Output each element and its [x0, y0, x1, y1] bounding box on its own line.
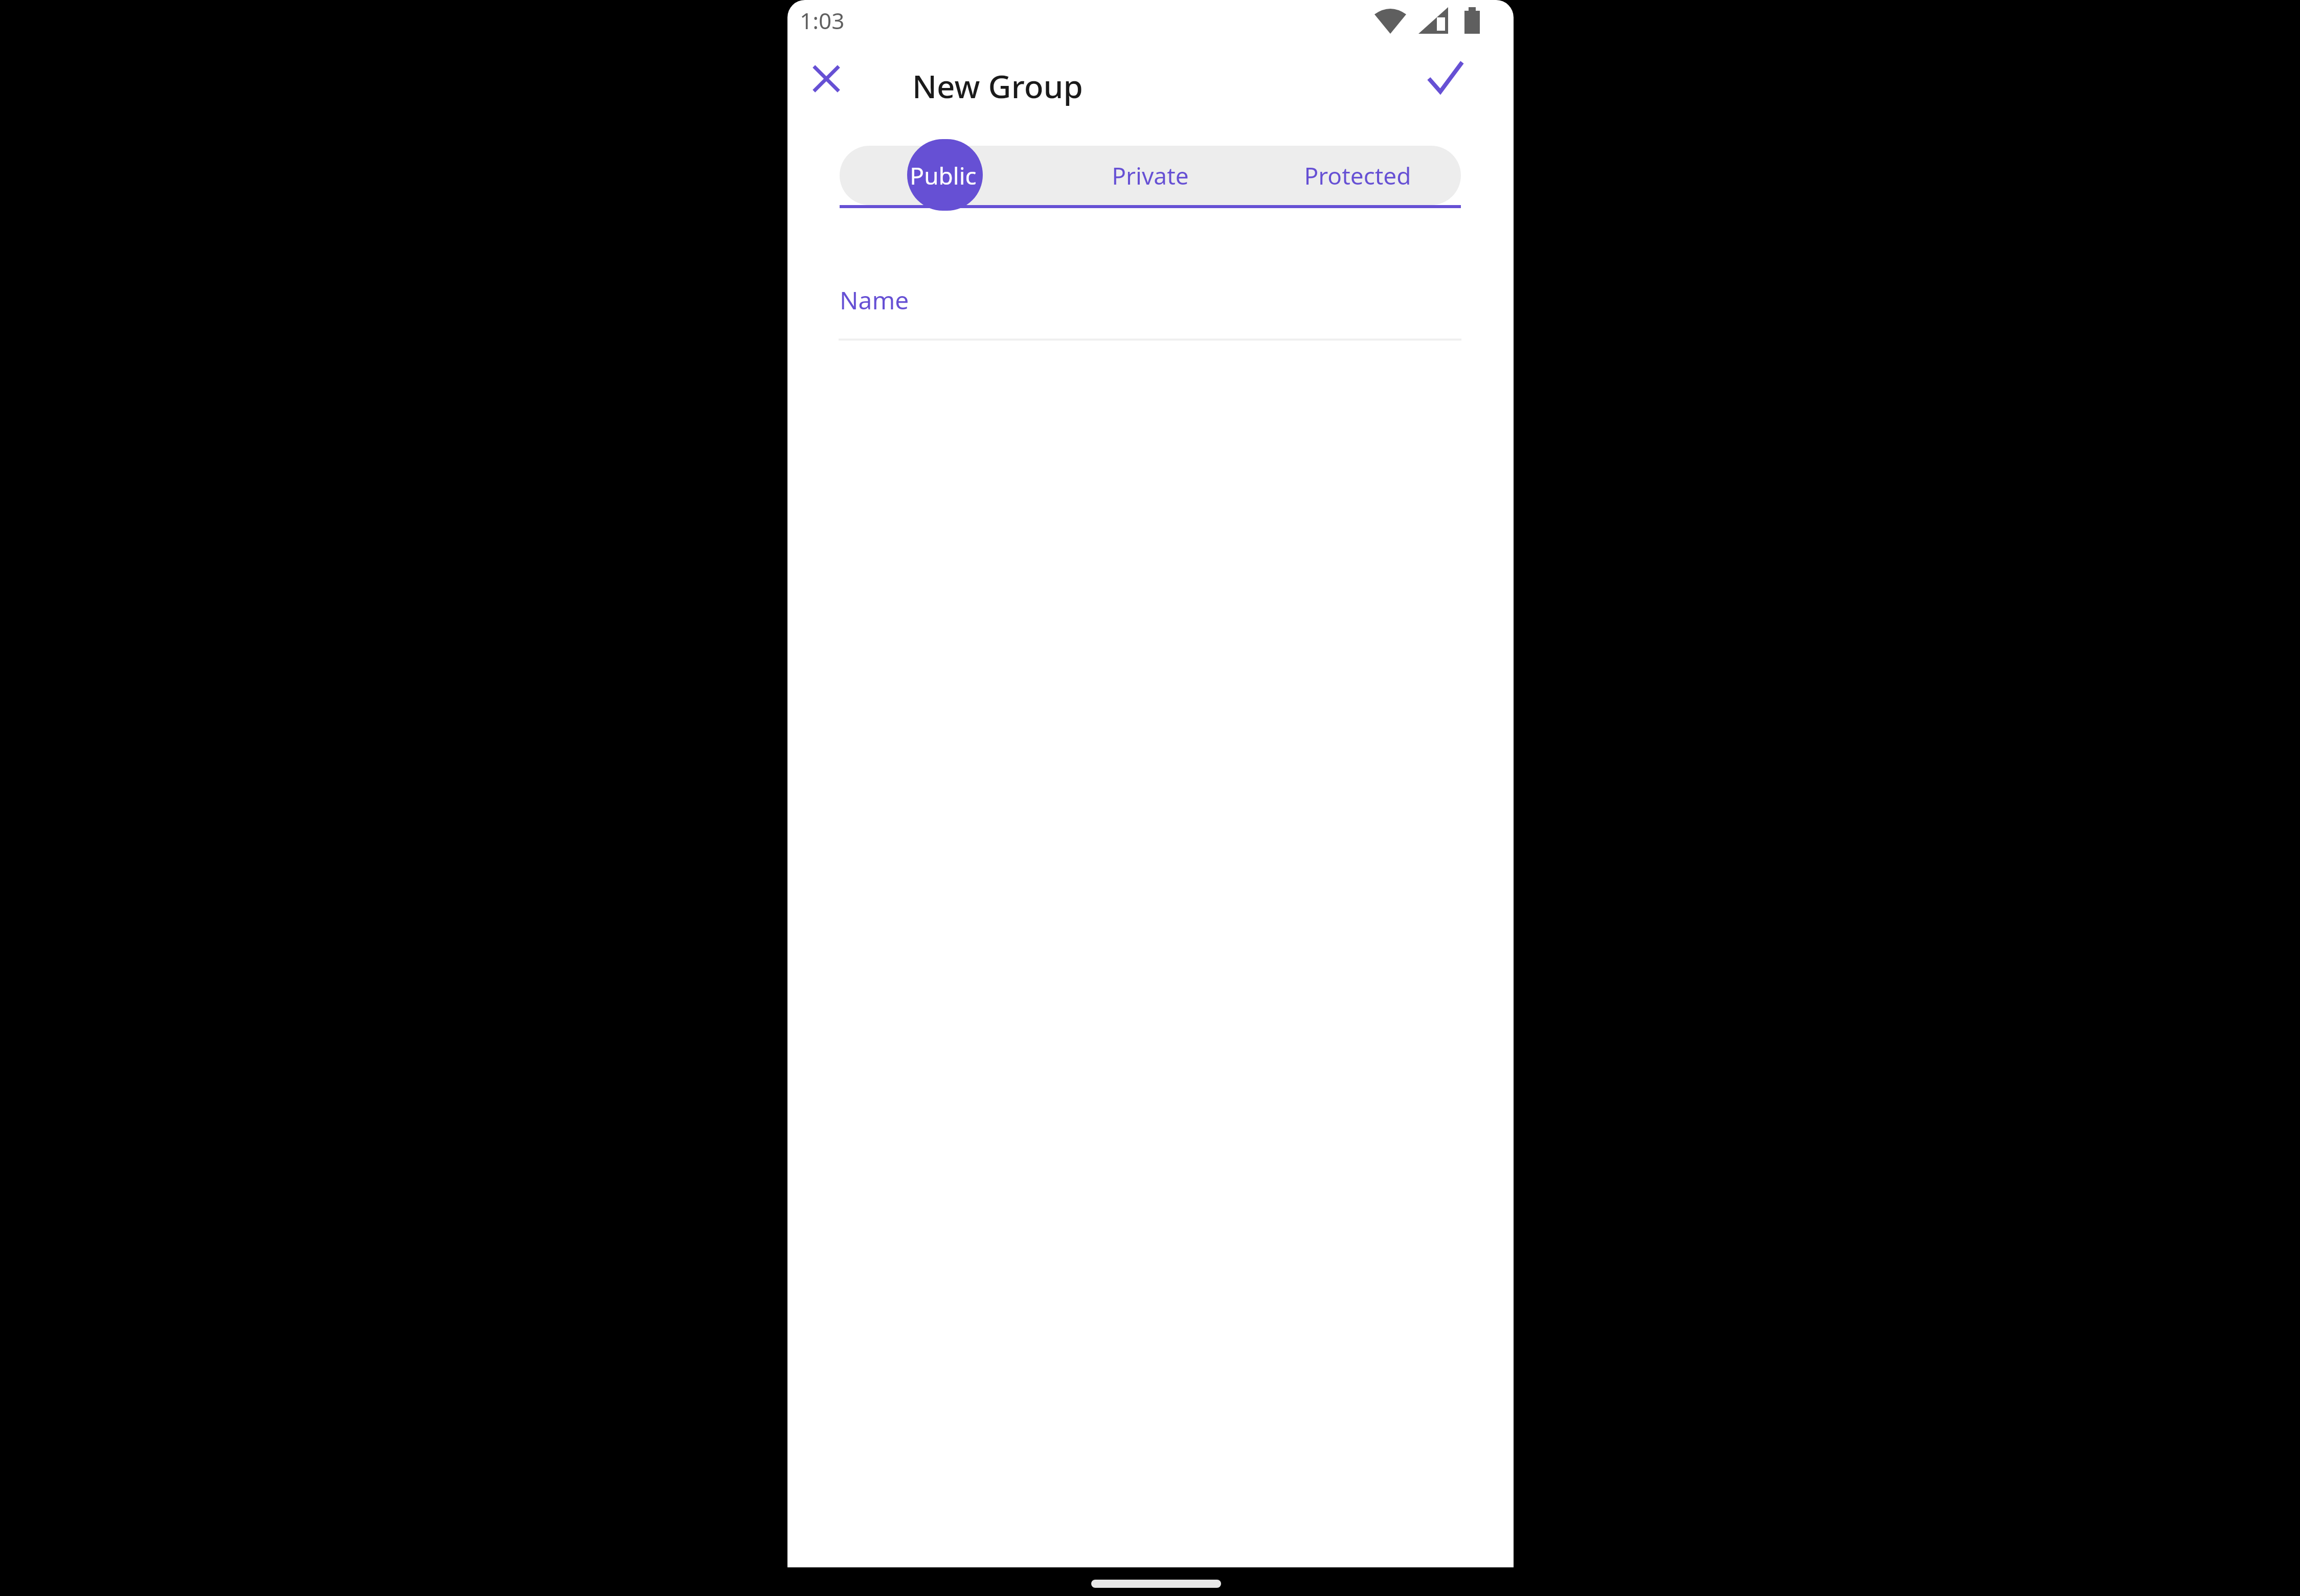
button[interactable]: Public	[840, 146, 1047, 205]
staticText: Protected	[1304, 160, 1411, 192]
button[interactable]: Protected	[1254, 146, 1461, 205]
staticText: Private	[1112, 160, 1189, 192]
button[interactable]: Done	[1416, 50, 1474, 107]
button[interactable]: Close	[799, 51, 854, 106]
staticText: Public	[910, 160, 977, 192]
staticText: 1:03	[800, 5, 845, 36]
staticText: Name	[840, 283, 909, 317]
staticText: New Group	[912, 64, 1083, 107]
button[interactable]: Private	[1047, 146, 1254, 205]
button[interactable]: Name	[839, 266, 1461, 342]
